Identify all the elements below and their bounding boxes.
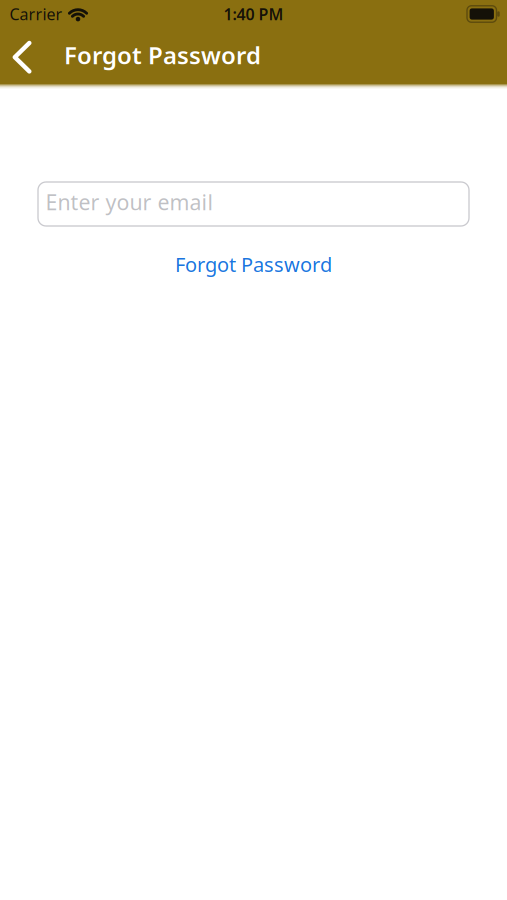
button[interactable]: Forgot Password xyxy=(175,251,332,278)
staticText: Enter your email xyxy=(45,188,213,216)
button[interactable]: Enter your email xyxy=(38,182,469,226)
staticText: 1:40 PM xyxy=(223,3,283,25)
button[interactable]: Back xyxy=(0,28,44,84)
staticText: Forgot Password xyxy=(64,39,261,71)
staticText: Forgot Password xyxy=(175,251,332,278)
staticText: Carrier xyxy=(9,3,62,25)
